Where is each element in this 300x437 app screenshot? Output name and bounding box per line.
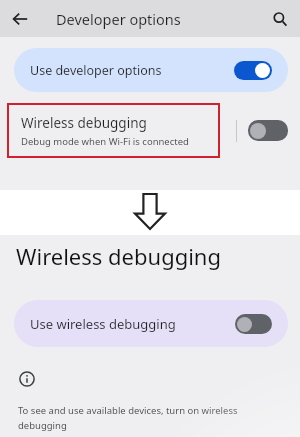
other: Info — [19, 371, 35, 387]
button[interactable]: Use developer options — [14, 48, 288, 92]
staticText: Debug mode when Wi-Fi is connected — [21, 135, 189, 148]
staticText: To see and use available devices, turn o… — [18, 404, 238, 417]
button[interactable]: Back — [6, 5, 34, 33]
button[interactable]: Use wireless debugging — [14, 300, 288, 347]
button[interactable]: Wireless debugging — [7, 103, 220, 158]
button[interactable]: Use wireless debugging toggle, off — [235, 314, 272, 334]
button[interactable]: Use developer options toggle, on — [234, 61, 272, 80]
button[interactable]: Wireless debugging toggle, off — [248, 120, 288, 141]
staticText: Wireless debugging — [21, 114, 147, 132]
button[interactable]: Search — [266, 5, 294, 33]
staticText: debugging — [18, 419, 67, 432]
staticText: Use wireless debugging — [30, 315, 235, 333]
staticText: Wireless debugging — [16, 241, 221, 271]
staticText: Developer options — [56, 9, 181, 29]
staticText: Use developer options — [30, 62, 234, 79]
